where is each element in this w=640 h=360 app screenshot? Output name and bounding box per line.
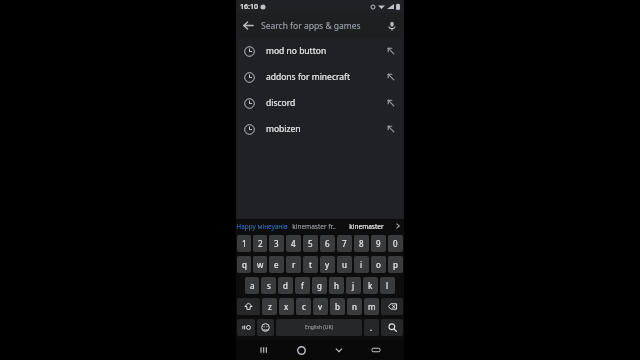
staticText: t: [309, 259, 312, 270]
staticText: e: [274, 259, 279, 270]
button[interactable]: o: [371, 256, 386, 273]
button[interactable]: Insert suggestion: [380, 118, 402, 140]
button[interactable]: 2: [253, 235, 267, 252]
staticText: p: [393, 259, 398, 270]
button[interactable]: i: [354, 256, 369, 273]
staticText: 16:10: [240, 2, 258, 12]
button[interactable]: addons for minecraft: [236, 64, 404, 90]
staticText: x: [284, 301, 289, 312]
staticText: m: [368, 301, 376, 312]
button[interactable]: f: [295, 277, 310, 294]
button[interactable]: q: [237, 256, 251, 273]
staticText: n: [352, 301, 357, 312]
staticText: 0: [393, 238, 398, 249]
button[interactable]: kinemaster fr..: [288, 219, 340, 233]
button[interactable]: mobizen: [236, 116, 404, 142]
button[interactable]: v: [313, 298, 328, 315]
button[interactable]: kinemaster: [340, 219, 392, 233]
button[interactable]: a: [245, 277, 259, 294]
button[interactable]: m: [364, 298, 379, 315]
staticText: y: [325, 259, 330, 270]
staticText: 2: [258, 238, 263, 249]
button[interactable]: n: [347, 298, 362, 315]
button[interactable]: Insert suggestion: [380, 92, 402, 114]
staticText: kinemaster: [349, 222, 384, 231]
button[interactable]: l: [380, 277, 395, 294]
button[interactable]: 0: [388, 235, 403, 252]
staticText: discord: [266, 97, 296, 109]
staticText: q: [242, 259, 247, 270]
button[interactable]: g: [312, 277, 327, 294]
button[interactable]: r: [286, 256, 301, 273]
button[interactable]: j: [346, 277, 361, 294]
button[interactable]: k: [363, 277, 378, 294]
staticText: k: [368, 280, 373, 291]
button[interactable]: Shift: [237, 298, 260, 315]
staticText: r: [292, 259, 296, 270]
button[interactable]: x: [279, 298, 294, 315]
button[interactable]: 5: [303, 235, 318, 252]
staticText: h: [334, 280, 339, 291]
button[interactable]: z: [262, 298, 277, 315]
button[interactable]: Search for apps & games: [261, 13, 379, 38]
button[interactable]: Hide keyboard: [329, 340, 349, 360]
button[interactable]: 6: [320, 235, 335, 252]
button[interactable]: y: [320, 256, 335, 273]
staticText: z: [268, 301, 272, 312]
staticText: English (UK): [305, 324, 334, 331]
button[interactable]: Emoji: [257, 319, 274, 336]
staticText: w: [257, 259, 264, 270]
button[interactable]: Home: [291, 340, 311, 360]
button[interactable]: t: [303, 256, 318, 273]
button[interactable]: c: [296, 298, 311, 315]
button[interactable]: More suggestions: [392, 219, 404, 233]
button[interactable]: 7: [337, 235, 352, 252]
button[interactable]: 3: [269, 235, 284, 252]
button[interactable]: w: [253, 256, 267, 273]
staticText: u: [342, 259, 347, 270]
button[interactable]: Нарру мінеуанів: [236, 219, 288, 233]
button[interactable]: Backspace: [381, 298, 403, 315]
staticText: o: [376, 259, 381, 270]
button[interactable]: Search: [381, 319, 403, 336]
button[interactable]: 4: [286, 235, 301, 252]
staticText: d: [283, 280, 288, 291]
button[interactable]: Insert suggestion: [380, 40, 402, 62]
button[interactable]: e: [269, 256, 284, 273]
staticText: j: [352, 280, 355, 291]
staticText: f: [301, 280, 304, 291]
staticText: .: [370, 322, 373, 333]
staticText: i: [360, 259, 363, 270]
staticText: v: [318, 301, 323, 312]
button[interactable]: Back: [236, 13, 261, 38]
staticText: g: [317, 280, 322, 291]
button[interactable]: s: [261, 277, 276, 294]
staticText: c: [302, 301, 306, 312]
button[interactable]: p: [388, 256, 403, 273]
button[interactable]: mod no button: [236, 38, 404, 64]
button[interactable]: Symbols: [237, 319, 255, 336]
button[interactable]: Recent apps: [254, 340, 274, 360]
button[interactable]: d: [278, 277, 293, 294]
button[interactable]: 1: [237, 235, 251, 252]
staticText: mod no button: [266, 45, 327, 57]
staticText: 7: [342, 238, 347, 249]
button[interactable]: Change keyboard: [366, 340, 386, 360]
button[interactable]: .: [364, 319, 379, 336]
staticText: Нарру мінеуанів: [236, 222, 288, 231]
staticText: mobizen: [266, 123, 301, 135]
button[interactable]: h: [329, 277, 344, 294]
staticText: 5: [308, 238, 313, 249]
button[interactable]: Insert suggestion: [380, 66, 402, 88]
button[interactable]: discord: [236, 90, 404, 116]
button[interactable]: u: [337, 256, 352, 273]
staticText: l: [386, 280, 389, 291]
button[interactable]: b: [330, 298, 345, 315]
button[interactable]: English (UK): [276, 319, 362, 336]
staticText: s: [267, 280, 271, 291]
staticText: a: [250, 280, 255, 291]
staticText: 1: [242, 238, 247, 249]
button[interactable]: Voice search: [379, 13, 404, 38]
button[interactable]: 8: [354, 235, 369, 252]
button[interactable]: 9: [371, 235, 386, 252]
